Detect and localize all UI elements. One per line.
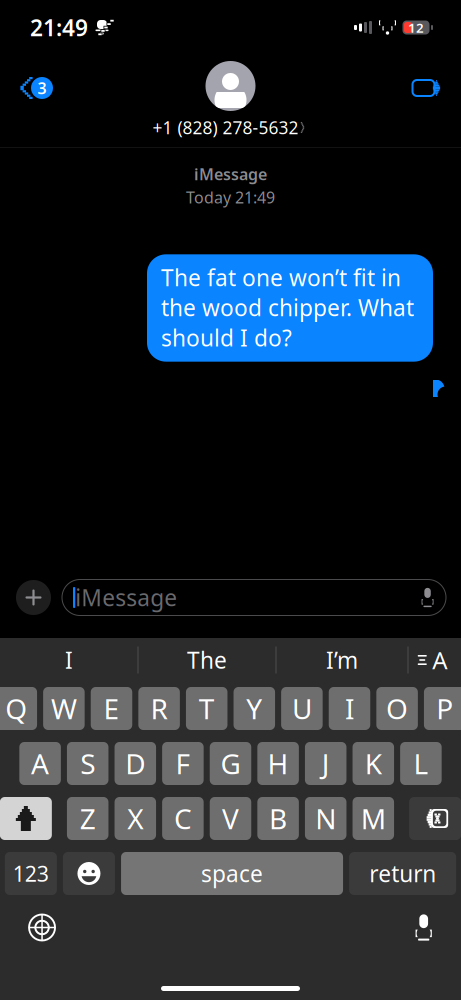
staticText: A [31, 745, 49, 782]
button[interactable]: T [186, 687, 227, 730]
button[interactable]: Q [0, 687, 37, 730]
button[interactable]: 123 [5, 852, 57, 895]
staticText: G [220, 745, 240, 782]
button[interactable]: space [121, 852, 343, 895]
staticText: M [361, 800, 386, 837]
staticText: W [51, 690, 77, 727]
button[interactable]: Delete [409, 797, 461, 840]
staticText: E [103, 690, 119, 727]
button[interactable]: Dictation [404, 903, 443, 952]
staticText: B [269, 800, 287, 837]
button[interactable]: V [210, 797, 251, 840]
staticText: +1 (828) 278-5632 [152, 116, 298, 139]
staticText: Q [5, 690, 27, 727]
staticText: 123 [13, 859, 49, 888]
button[interactable]: A [19, 742, 61, 785]
button[interactable]: I [329, 687, 370, 730]
staticText: space [201, 858, 263, 888]
button[interactable]: return [349, 852, 456, 895]
button[interactable]: Switch keyboard [18, 903, 67, 952]
staticText: Y [246, 690, 262, 727]
staticText: Z [80, 800, 96, 837]
staticText: F [175, 745, 190, 782]
button[interactable]: FaceTime video call [402, 67, 455, 108]
staticText: 12 [408, 19, 424, 36]
button[interactable]: The [138, 639, 275, 681]
staticText: The fat one won’t fit in the wood chippe… [161, 262, 414, 353]
staticText: 21:49 [30, 12, 88, 42]
staticText: H [268, 745, 289, 782]
staticText: V [222, 800, 239, 837]
button[interactable]: Y [234, 687, 275, 730]
button[interactable]: L [400, 742, 442, 785]
staticText: A [432, 644, 447, 676]
button[interactable]: P [424, 687, 461, 730]
button[interactable]: U [281, 687, 323, 730]
staticText: 3 [37, 77, 46, 99]
staticText: I [65, 645, 73, 675]
staticText: iMessage [75, 582, 177, 612]
button[interactable]: Add attachment [16, 580, 51, 615]
staticText: S [80, 745, 95, 782]
staticText: I’m [326, 645, 358, 675]
button[interactable]: X [114, 797, 156, 840]
button[interactable]: I [0, 639, 137, 681]
staticText: D [125, 745, 145, 782]
button[interactable]: N [305, 797, 346, 840]
button[interactable]: Contact info, +1 (828) 278-5632 [146, 114, 314, 141]
staticText: Today 21:49 [186, 187, 275, 208]
button[interactable]: Z [67, 797, 108, 840]
button[interactable]: E [91, 687, 132, 730]
button[interactable]: J [305, 742, 346, 785]
button[interactable]: Shift [0, 797, 52, 840]
button[interactable]: C [162, 797, 204, 840]
staticText: R [151, 690, 168, 727]
button[interactable]: O [376, 687, 418, 730]
button[interactable]: Text formatting [408, 639, 460, 681]
staticText: iMessage [194, 163, 267, 185]
staticText: C [174, 800, 192, 837]
button[interactable]: Emoji keyboard [63, 852, 115, 895]
staticText: N [315, 800, 336, 837]
button[interactable]: I’m [276, 639, 407, 681]
staticText: L [413, 745, 428, 782]
button[interactable]: R [138, 687, 180, 730]
button[interactable]: F [162, 742, 204, 785]
button[interactable]: D [114, 742, 156, 785]
button[interactable]: S [67, 742, 108, 785]
staticText: I [345, 690, 354, 727]
staticText: return [369, 858, 436, 888]
staticText: U [292, 690, 312, 727]
staticText: O [386, 690, 408, 727]
button[interactable]: B [257, 797, 299, 840]
staticText: T [199, 690, 215, 727]
staticText: K [365, 745, 382, 782]
button[interactable]: H [257, 742, 299, 785]
staticText: The [187, 645, 227, 675]
button[interactable]: M [353, 797, 394, 840]
button[interactable]: G [210, 742, 251, 785]
button[interactable]: W [43, 687, 85, 730]
button[interactable]: Back, 3 unread messages [6, 65, 63, 111]
staticText: J [322, 745, 330, 782]
staticText: P [436, 690, 453, 727]
staticText: X [127, 800, 143, 837]
button[interactable]: iMessage text field [62, 579, 446, 615]
button[interactable]: K [353, 742, 394, 785]
